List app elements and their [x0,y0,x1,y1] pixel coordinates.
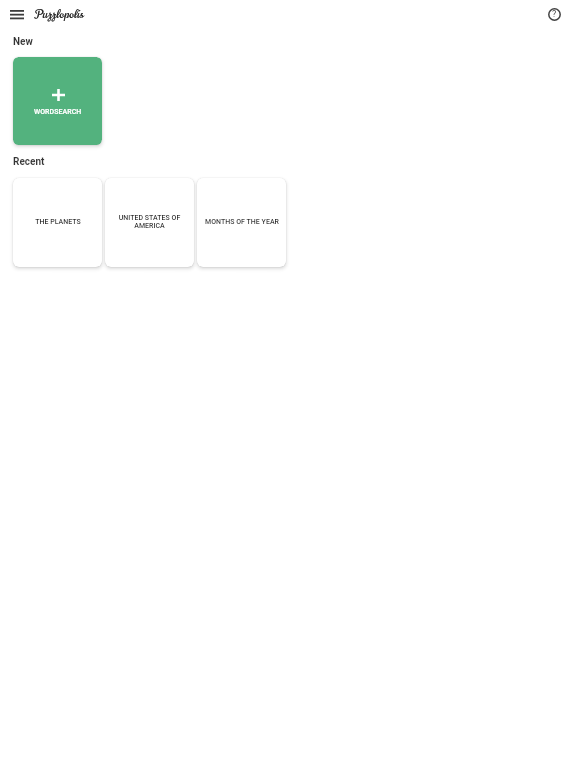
staticText: MONTHS OF THE YEAR [205,218,279,226]
staticText: ? [552,9,557,20]
button[interactable]: WORDSEARCH [13,57,102,145]
button[interactable]: MONTHS OF THE YEAR [197,178,286,267]
staticText: Puzzlopolis [35,6,84,22]
staticText: Puzzlopolis [35,6,84,22]
staticText: THE PLANETS [35,218,81,226]
button[interactable]: Open navigation menu [3,0,31,28]
button[interactable]: Help [542,2,566,26]
staticText: New [13,36,33,48]
staticText: Recent [13,156,45,168]
staticText: WORDSEARCH [34,108,82,116]
button[interactable]: THE PLANETS [13,178,102,267]
button[interactable]: UNITED STATES OF AMERICA [105,178,194,267]
staticText: UNITED STATES OF AMERICA [111,214,188,230]
